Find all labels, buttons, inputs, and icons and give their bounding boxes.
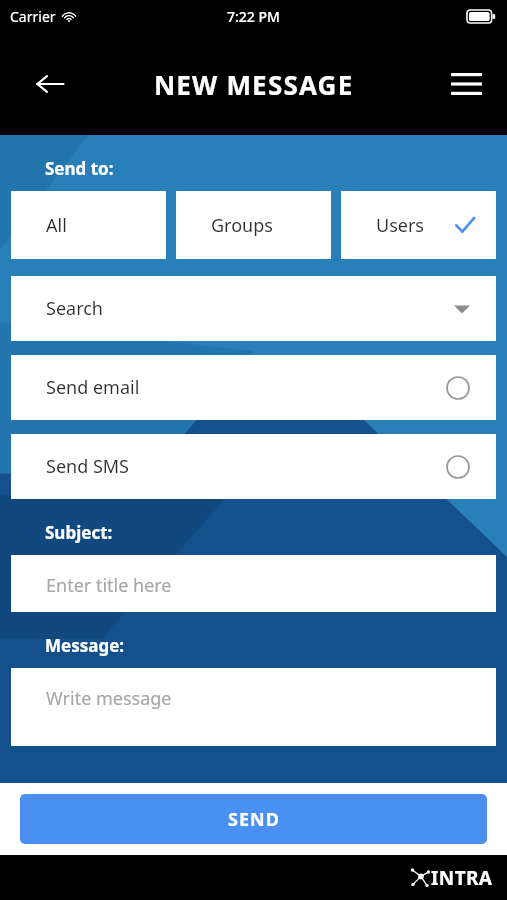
button[interactable]: SEND [20,794,487,844]
staticText: 7:22 PM [227,7,280,26]
button[interactable]: Enter title here [11,555,496,612]
staticText: INTRA [431,865,493,891]
button[interactable]: Send email [11,355,496,420]
staticText: Send email [46,375,140,400]
button[interactable]: Search [11,276,496,341]
staticText: SEND [228,807,280,832]
staticText: Send SMS [46,454,129,479]
staticText: Carrier [10,7,56,26]
button[interactable]: Send SMS [11,434,496,499]
staticText: Send to: [45,157,114,180]
button[interactable]: Write message [11,668,496,746]
button[interactable]: All [11,191,166,259]
staticText: Write message [46,686,172,711]
button[interactable]: Menu [443,61,489,107]
staticText: Enter title here [46,573,172,598]
button[interactable]: Groups [176,191,331,259]
staticText: Subject: [45,521,113,544]
staticText: Search [46,296,103,321]
staticText: NEW MESSAGE [154,67,354,102]
staticText: Users [376,213,424,238]
staticText: Groups [211,213,273,238]
button[interactable]: Users [341,191,496,259]
staticText: All [46,213,67,238]
button[interactable]: Back [28,62,72,106]
staticText: Message: [45,634,125,657]
